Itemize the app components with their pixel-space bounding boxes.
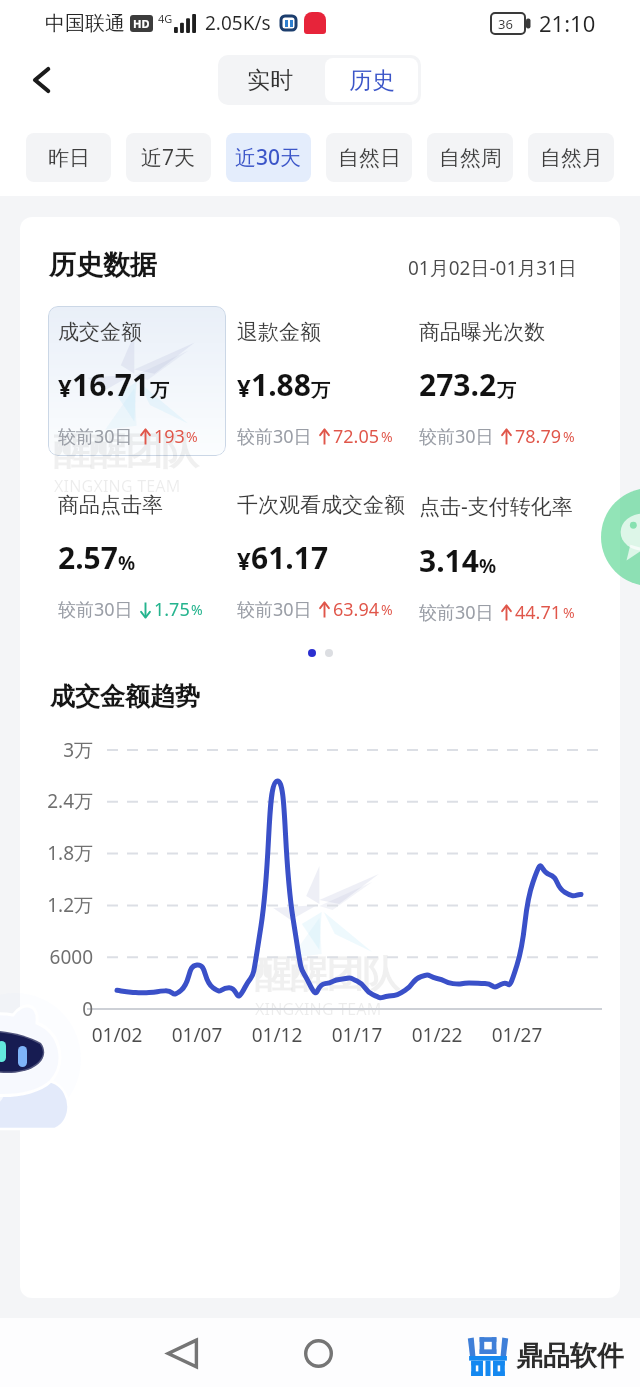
staticText: 72.05 bbox=[333, 424, 380, 449]
staticText: 历史数据 bbox=[49, 248, 157, 282]
button[interactable]: WeChat bbox=[601, 488, 640, 586]
staticText: 近30天 bbox=[235, 143, 302, 172]
staticText: XINGXING TEAM bbox=[54, 475, 181, 497]
staticText: 01/07 bbox=[167, 1022, 227, 1048]
staticText: 01/12 bbox=[247, 1022, 307, 1048]
staticText: 01/17 bbox=[327, 1022, 387, 1048]
staticText: 273.2 bbox=[419, 364, 497, 405]
staticText: 自然月 bbox=[540, 145, 603, 171]
staticText: 较前30日 bbox=[237, 424, 312, 449]
button[interactable]: Back bbox=[152, 1323, 212, 1383]
staticText: 醒醒团队 bbox=[255, 950, 399, 998]
staticText: 近7天 bbox=[141, 143, 196, 172]
staticText: 1.88 bbox=[251, 364, 311, 405]
staticText: 点击-支付转化率 bbox=[419, 492, 573, 521]
staticText: 商品曝光次数 bbox=[419, 319, 545, 345]
staticText: 自然周 bbox=[439, 145, 502, 171]
staticText: 01/02 bbox=[87, 1022, 147, 1048]
staticText: 63.94 bbox=[333, 597, 380, 622]
button[interactable]: 商品曝光次数 bbox=[419, 319, 604, 449]
staticText: 鼎品软件 bbox=[516, 1339, 624, 1373]
staticText: % bbox=[563, 603, 575, 622]
staticText: 万 bbox=[311, 379, 330, 403]
staticText: 01/27 bbox=[487, 1022, 547, 1048]
staticText: 自然日 bbox=[338, 145, 401, 171]
staticText: 01/22 bbox=[407, 1022, 467, 1048]
staticText: 万 bbox=[497, 379, 516, 403]
staticText: 78.79 bbox=[515, 424, 562, 449]
staticText: HD bbox=[133, 16, 150, 31]
staticText: 千次观看成交金额 bbox=[237, 492, 405, 518]
staticText: 商品点击率 bbox=[58, 492, 163, 518]
staticText: 成交金额 bbox=[58, 319, 142, 345]
button[interactable]: Home bbox=[288, 1323, 348, 1383]
button[interactable]: 点击-支付转化率 bbox=[419, 492, 604, 625]
button[interactable]: 近30天 bbox=[226, 133, 311, 182]
staticText: 较前30日 bbox=[419, 600, 494, 625]
staticText: 2.4万 bbox=[20, 788, 93, 814]
staticText: 3.14 bbox=[419, 540, 479, 581]
button[interactable]: 自然周 bbox=[427, 133, 513, 182]
staticText: 36 bbox=[498, 15, 513, 33]
button[interactable]: 退款金额 bbox=[237, 319, 422, 449]
staticText: 3万 bbox=[20, 737, 93, 763]
staticText: 较前30日 bbox=[237, 597, 312, 622]
staticText: 历史 bbox=[349, 66, 395, 95]
staticText: 1.2万 bbox=[20, 892, 93, 918]
staticText: 2.05K/s bbox=[205, 10, 271, 36]
staticText: ¥ bbox=[58, 371, 72, 404]
staticText: % bbox=[563, 427, 575, 446]
staticText: 2.57 bbox=[58, 537, 118, 578]
staticText: 醒醒团队 bbox=[54, 427, 198, 475]
button[interactable]: 历史 bbox=[325, 58, 418, 102]
button[interactable]: Back bbox=[11, 50, 71, 110]
staticText: 01月02日-01月31日 bbox=[408, 255, 578, 281]
staticText: 实时 bbox=[247, 66, 293, 95]
button[interactable]: 昨日 bbox=[26, 133, 111, 182]
button[interactable]: 千次观看成交金额 bbox=[237, 492, 422, 622]
button[interactable]: 自然月 bbox=[528, 133, 614, 182]
staticText: % bbox=[381, 427, 393, 446]
staticText: 退款金额 bbox=[237, 319, 321, 345]
staticText: 较前30日 bbox=[419, 424, 494, 449]
staticText: 0 bbox=[20, 996, 93, 1022]
button[interactable]: 实时 bbox=[218, 55, 322, 105]
staticText: 万 bbox=[150, 379, 169, 403]
staticText: ¥ bbox=[237, 371, 251, 404]
staticText: 6000 bbox=[20, 944, 93, 970]
staticText: 较前30日 bbox=[58, 597, 133, 622]
staticText: 中国联通 bbox=[45, 11, 125, 36]
staticText: 成交金额趋势 bbox=[50, 681, 200, 712]
staticText: 16.71 bbox=[72, 364, 150, 405]
staticText: % bbox=[186, 427, 198, 446]
staticText: % bbox=[479, 553, 497, 579]
staticText: 193 bbox=[154, 424, 185, 449]
button[interactable]: 商品点击率 bbox=[58, 492, 243, 622]
staticText: 较前30日 bbox=[58, 424, 133, 449]
button[interactable]: Assistant bbox=[15, 1011, 85, 1101]
staticText: 61.17 bbox=[251, 537, 329, 578]
staticText: XINGXING TEAM bbox=[255, 998, 382, 1020]
staticText: 44.71 bbox=[515, 600, 562, 625]
staticText: 1.75 bbox=[154, 597, 190, 622]
staticText: % bbox=[118, 550, 136, 576]
button[interactable] bbox=[48, 306, 226, 456]
button[interactable]: 成交金额 bbox=[58, 319, 243, 449]
staticText: 1.8万 bbox=[20, 840, 93, 866]
staticText: % bbox=[191, 600, 203, 619]
button[interactable]: 自然日 bbox=[326, 133, 412, 182]
staticText: % bbox=[381, 600, 393, 619]
button[interactable]: 近7天 bbox=[126, 133, 211, 182]
staticText: ¥ bbox=[237, 544, 251, 577]
staticText: 21:10 bbox=[539, 8, 596, 38]
staticText: 4G bbox=[158, 11, 173, 26]
staticText: 昨日 bbox=[48, 145, 90, 171]
